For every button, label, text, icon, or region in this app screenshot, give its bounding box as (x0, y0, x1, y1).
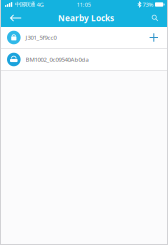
button[interactable]: Scan for locks (146, 9, 166, 26)
button[interactable]: BM1002_0c09540Ab0da (0, 49, 168, 71)
staticText: 11:05 (77, 1, 91, 8)
staticText: 73% (143, 0, 154, 8)
button[interactable]: J301_5f9cc0 (0, 27, 168, 49)
staticText: 4G (36, 0, 43, 8)
button[interactable]: Back (2, 9, 26, 26)
staticText: BM1002_0c09540Ab0da (26, 55, 89, 64)
staticText: J301_5f9cc0 (26, 33, 57, 42)
staticText: Nearby Locks (58, 12, 114, 24)
staticText: 中国联通 (15, 1, 35, 8)
